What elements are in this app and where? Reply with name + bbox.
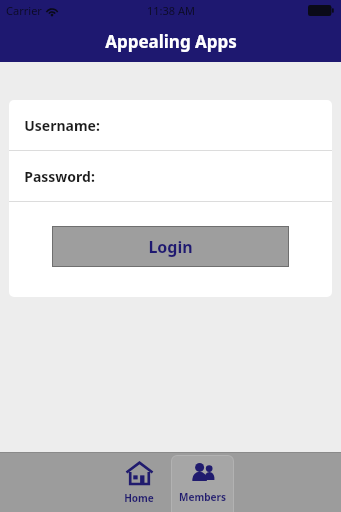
- other: Battery full: [308, 5, 334, 16]
- staticText: Login: [148, 236, 193, 258]
- staticText: Appealing Apps: [105, 30, 237, 53]
- staticText: Password:: [24, 167, 95, 186]
- button[interactable]: Login: [52, 226, 289, 267]
- other: Home: [124, 458, 155, 489]
- staticText: 11:38 AM: [147, 3, 195, 18]
- button[interactable]: Members: [171, 455, 234, 512]
- button[interactable]: Password:: [9, 151, 332, 201]
- button[interactable]: Username:: [9, 100, 332, 150]
- button[interactable]: Home: [107, 453, 171, 512]
- staticText: Username:: [24, 116, 100, 135]
- other: Members: [188, 459, 217, 488]
- staticText: Carrier: [6, 3, 42, 18]
- staticText: Members: [179, 490, 226, 504]
- staticText: Home: [124, 491, 154, 505]
- other: Wi-Fi signal: [46, 5, 58, 17]
